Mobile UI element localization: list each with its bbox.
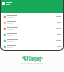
staticText: for everyday	[24, 58, 41, 62]
button[interactable]: Electricity	[1, 19, 63, 25]
button[interactable]: Internet	[1, 31, 63, 37]
button[interactable]: Water	[1, 25, 63, 31]
button[interactable]: Airtime	[1, 13, 63, 19]
staticText: MCB Payments	[22, 56, 43, 60]
button[interactable]: Account	[2, 2, 5, 5]
staticText: Fast, simple and secure	[21, 62, 43, 65]
button[interactable]: Taxes	[1, 43, 63, 49]
button[interactable]: Insurance	[1, 37, 63, 43]
